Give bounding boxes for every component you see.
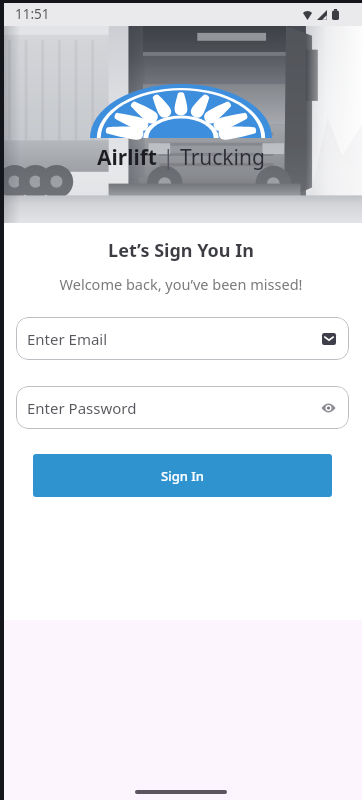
staticText: Welcome back, you’ve been missed! bbox=[0, 274, 362, 294]
staticText: Enter Email bbox=[27, 329, 108, 349]
staticText: | bbox=[157, 143, 180, 172]
other: Email bbox=[322, 333, 336, 345]
staticText: 11:51 bbox=[15, 5, 50, 23]
button[interactable]: Enter Password bbox=[16, 386, 349, 429]
staticText: Trucking bbox=[180, 143, 265, 172]
staticText: Airlift bbox=[97, 143, 157, 172]
staticText: Sign In bbox=[161, 467, 205, 485]
other: Show password bbox=[321, 403, 336, 413]
button[interactable]: Enter Email bbox=[16, 317, 349, 360]
button[interactable]: Sign In bbox=[33, 454, 332, 497]
staticText: Let’s Sign You In bbox=[0, 238, 362, 263]
staticText: Enter Password bbox=[27, 398, 137, 418]
